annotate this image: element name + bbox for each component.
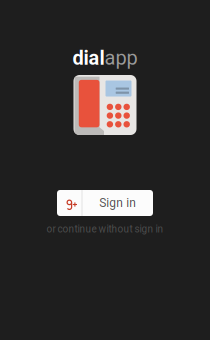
button[interactable]: or continue without sign in [46, 222, 163, 236]
staticText: app [104, 46, 137, 70]
button[interactable]: Sign in [57, 190, 153, 216]
staticText: or continue without sign in [46, 223, 163, 235]
staticText: dial [72, 46, 104, 70]
staticText: Sign in [99, 196, 136, 210]
